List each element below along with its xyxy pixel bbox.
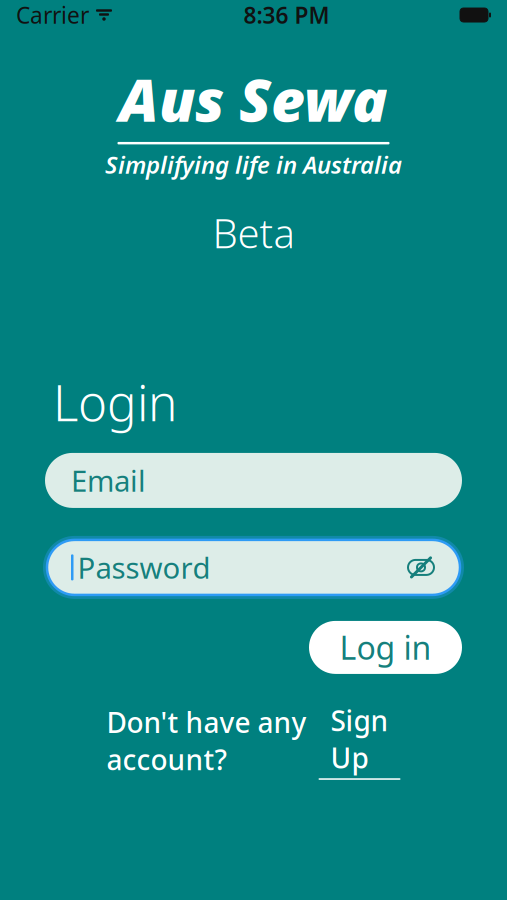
staticText: Beta [212, 206, 294, 259]
staticText: Email [71, 461, 146, 500]
staticText: Login [53, 369, 177, 435]
button[interactable]: Sign Up [318, 702, 400, 780]
button[interactable]: Password [45, 538, 462, 597]
staticText: Simplifying life in Australia [105, 148, 402, 180]
staticText: 8:36 PM [243, 0, 329, 30]
button[interactable]: Log in [309, 621, 462, 674]
staticText: Carrier [16, 0, 89, 30]
staticText: Don't have any account? [106, 704, 306, 778]
button[interactable]: Email [45, 453, 462, 508]
staticText: Sign Up [330, 702, 388, 776]
staticText: Password [77, 548, 210, 587]
staticText: Log in [339, 626, 431, 669]
staticText: Aus Sewa [119, 60, 388, 138]
